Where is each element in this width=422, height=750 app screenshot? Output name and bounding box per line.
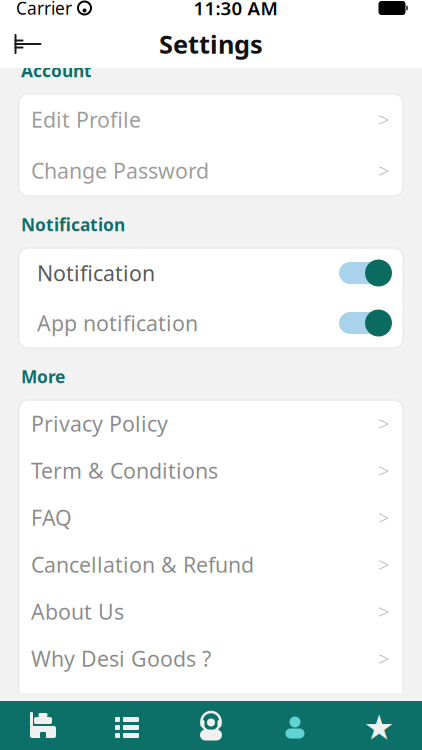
staticText: Notification — [37, 259, 155, 287]
button[interactable]: Cancellation & Refund — [19, 541, 403, 588]
staticText: More — [21, 365, 65, 388]
button[interactable]: Favourites — [337, 701, 421, 750]
staticText: FAQ — [31, 503, 72, 532]
staticText: > — [378, 410, 389, 437]
staticText: Cancellation & Refund — [31, 550, 254, 579]
button[interactable]: Support — [169, 701, 253, 750]
staticText: Carrier — [16, 0, 72, 19]
staticText: App notification — [37, 309, 198, 337]
staticText: > — [378, 598, 389, 625]
staticText: Settings — [159, 27, 263, 61]
staticText: > — [378, 157, 389, 184]
button[interactable]: Profile — [253, 701, 337, 750]
button[interactable]: FAQ — [19, 494, 403, 541]
staticText: > — [378, 645, 389, 672]
button[interactable]: App notification — [19, 298, 403, 348]
staticText: > — [378, 692, 389, 719]
staticText: > — [378, 551, 389, 578]
button[interactable]: Home — [1, 701, 85, 750]
staticText: 11:30 AM — [193, 0, 277, 20]
staticText: Why Desi Goods ? — [31, 644, 211, 673]
button[interactable]: Notification — [19, 248, 403, 298]
staticText: > — [378, 457, 389, 484]
button[interactable]: Term & Conditions — [19, 447, 403, 494]
button[interactable]: Why Desi Goods ? — [19, 635, 403, 682]
button[interactable]: Edit Profile — [19, 94, 403, 145]
staticText: > — [378, 106, 389, 133]
staticText: Term & Conditions — [31, 456, 218, 485]
staticText: About Us — [31, 597, 124, 626]
staticText: > — [378, 504, 389, 531]
staticText: Privacy Policy — [31, 409, 168, 438]
button[interactable]: Orders — [85, 701, 169, 750]
button[interactable]: Contact Us — [19, 682, 403, 729]
button[interactable]: Change Password — [19, 145, 403, 196]
button[interactable]: About Us — [19, 588, 403, 635]
staticText: Change Password — [31, 156, 209, 185]
staticText: Contact Us — [31, 691, 140, 720]
staticText: Edit Profile — [31, 105, 141, 134]
button[interactable]: Back — [8, 27, 48, 61]
staticText: Notification — [21, 213, 125, 236]
staticText: Account — [21, 59, 92, 82]
staticText: ★ — [363, 708, 394, 747]
button[interactable]: Privacy Policy — [19, 400, 403, 447]
